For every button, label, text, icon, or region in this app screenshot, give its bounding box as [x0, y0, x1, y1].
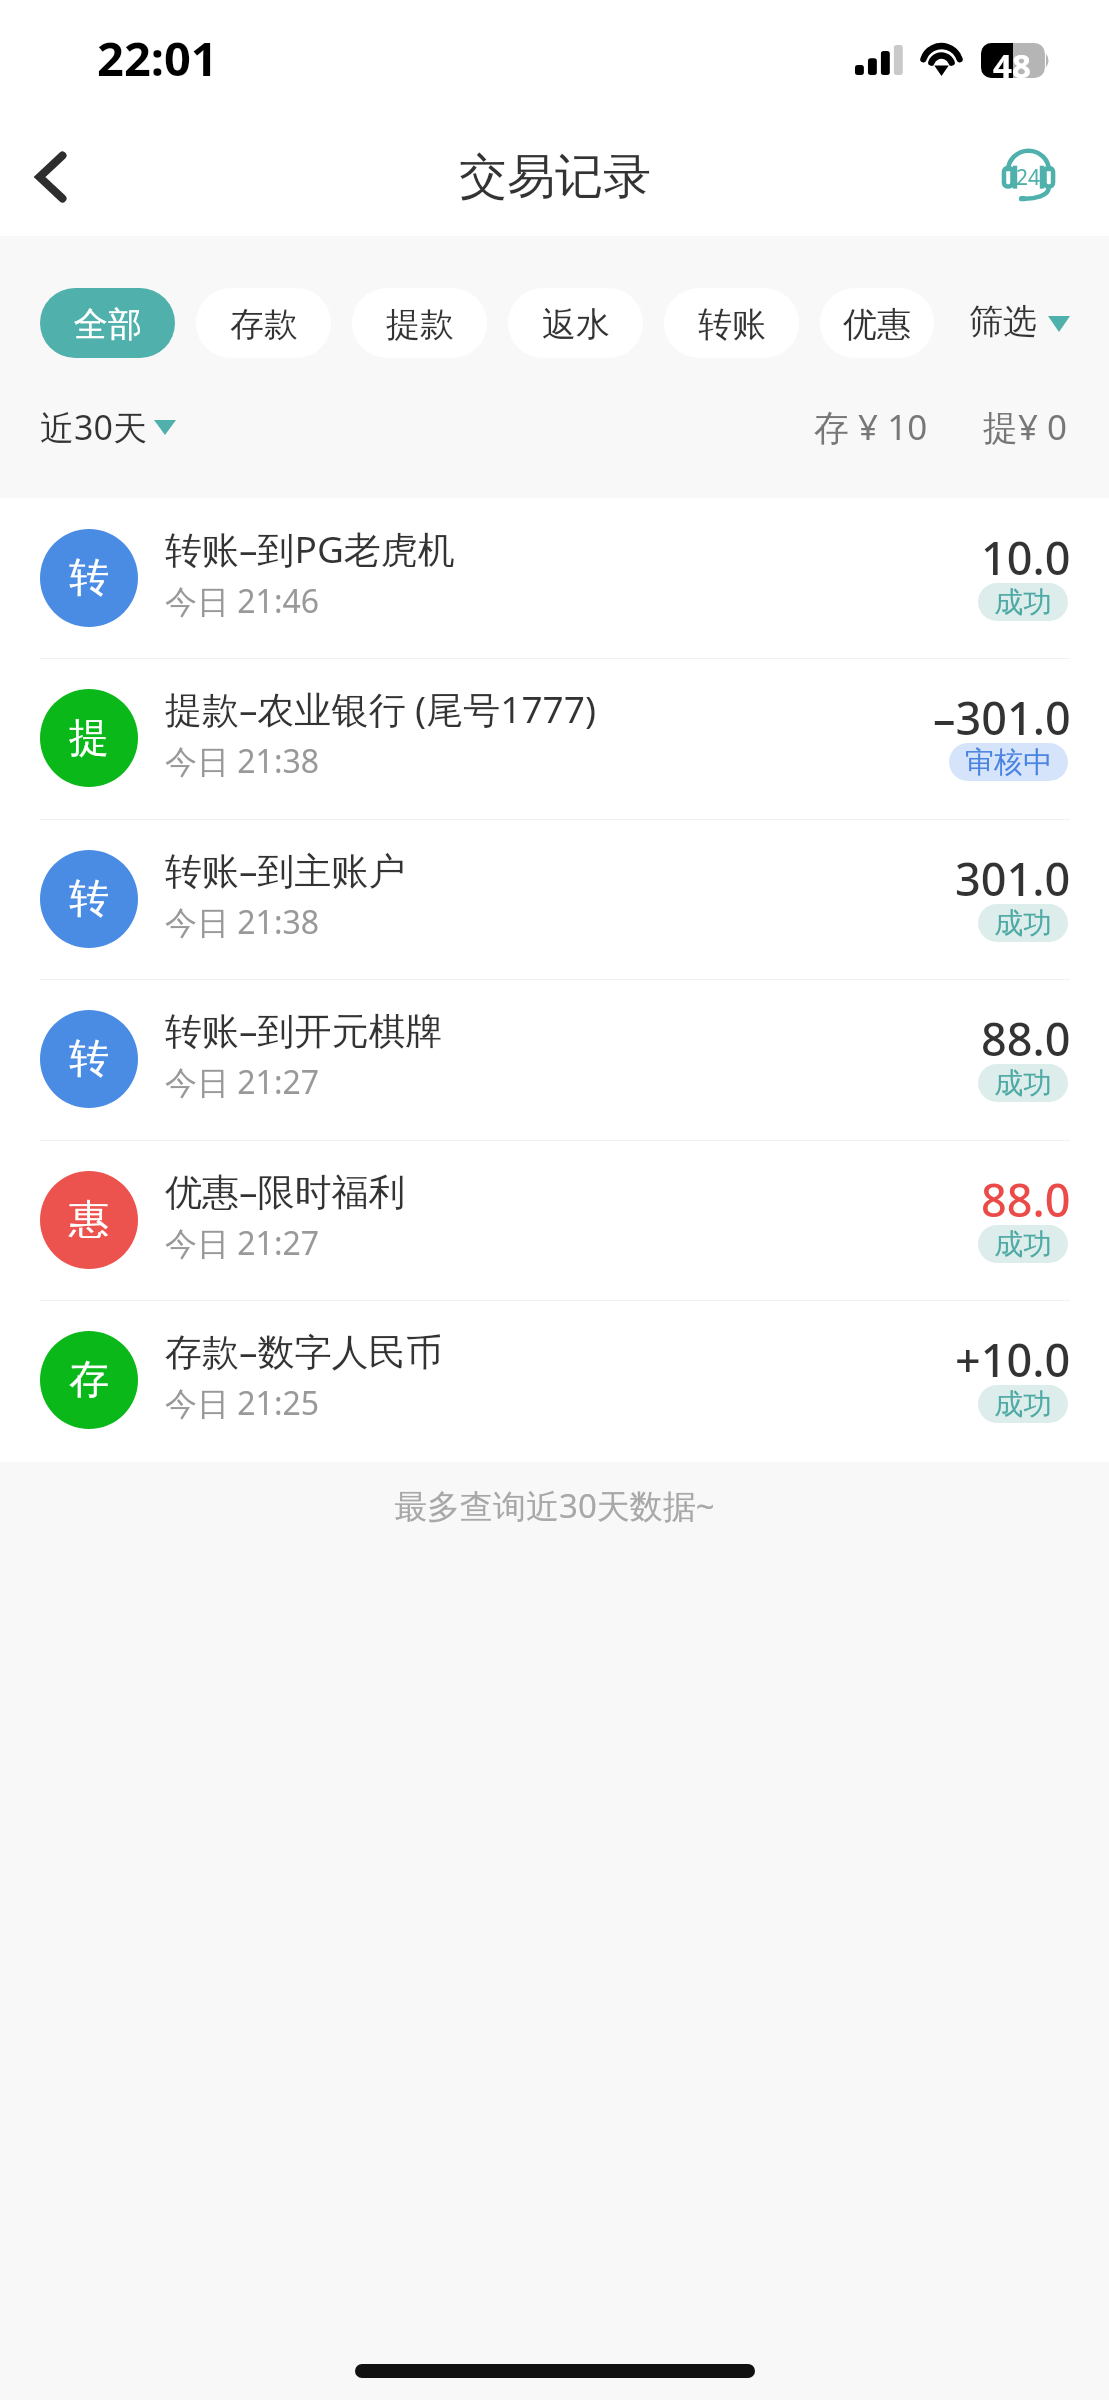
staticText: 今日 21:27: [165, 1221, 320, 1265]
staticText: 今日 21:25: [165, 1381, 320, 1425]
staticText: 48: [993, 43, 1031, 78]
button[interactable]: 提款: [352, 288, 487, 358]
staticText: 成功: [994, 905, 1052, 942]
button[interactable]: 转: [0, 819, 1109, 979]
button[interactable]: Customer service: [980, 128, 1076, 224]
staticText: 优惠: [843, 303, 911, 346]
staticText: 转账–到PG老虎机: [165, 523, 455, 574]
button[interactable]: 全部: [40, 288, 175, 358]
button[interactable]: 近30天: [40, 397, 176, 457]
staticText: 惠: [69, 1194, 109, 1244]
button[interactable]: 筛选: [969, 289, 1070, 359]
staticText: 88.0: [981, 1169, 1071, 1230]
staticText: 成功: [994, 1065, 1052, 1102]
staticText: 存: [69, 1354, 109, 1404]
staticText: 优惠–限时福利: [165, 1165, 406, 1216]
button[interactable]: 优惠: [820, 288, 934, 358]
button[interactable]: 存款: [196, 288, 331, 358]
staticText: 转账: [698, 303, 766, 346]
button[interactable]: Back: [3, 129, 99, 225]
staticText: 今日 21:38: [165, 900, 320, 944]
button[interactable]: 转: [0, 498, 1109, 658]
staticText: 今日 21:46: [165, 579, 320, 623]
staticText: 成功: [994, 1226, 1052, 1263]
staticText: 筛选: [969, 300, 1037, 343]
staticText: 返水: [542, 303, 610, 346]
button[interactable]: 存: [0, 1300, 1109, 1460]
staticText: 成功: [994, 1386, 1052, 1423]
staticText: 提: [69, 712, 109, 762]
button[interactable]: 转账: [664, 288, 799, 358]
staticText: 最多查询近30天数据~: [394, 1483, 715, 1528]
staticText: 存 ¥ 10: [814, 403, 928, 451]
staticText: 提¥ 0: [983, 403, 1068, 451]
staticText: 成功: [994, 584, 1052, 621]
staticText: 22:01: [97, 26, 218, 90]
staticText: 转账–到开元棋牌: [165, 1004, 443, 1055]
staticText: 近30天: [40, 404, 147, 450]
button[interactable]: 转: [0, 979, 1109, 1139]
staticText: 24: [1016, 163, 1041, 192]
staticText: 301.0: [955, 848, 1071, 909]
staticText: 提款: [386, 303, 454, 346]
staticText: 转: [69, 1033, 109, 1083]
staticText: 交易记录: [459, 147, 651, 207]
staticText: 今日 21:38: [165, 739, 320, 783]
staticText: 转: [69, 873, 109, 923]
staticText: 10.0: [981, 527, 1071, 588]
button[interactable]: 提: [0, 658, 1109, 818]
staticText: 转: [69, 552, 109, 602]
staticText: 转账–到主账户: [165, 844, 406, 895]
staticText: 存款: [230, 303, 298, 346]
staticText: 存款–数字人民币: [165, 1325, 443, 1376]
staticText: +10.0: [955, 1329, 1071, 1390]
staticText: 审核中: [965, 744, 1052, 781]
staticText: 提款–农业银行 (尾号1777): [165, 683, 596, 734]
button[interactable]: 惠: [0, 1140, 1109, 1300]
staticText: –301.0: [933, 687, 1071, 748]
staticText: 88.0: [981, 1008, 1071, 1069]
staticText: 全部: [74, 303, 142, 346]
button[interactable]: 返水: [508, 288, 643, 358]
staticText: 今日 21:27: [165, 1060, 320, 1104]
